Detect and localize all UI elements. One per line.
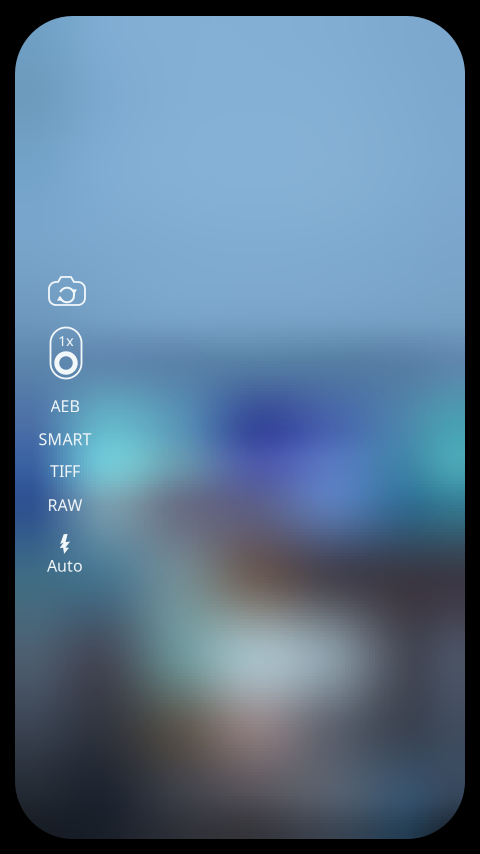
button[interactable]: Zoom, 1x (44, 321, 87, 384)
button[interactable]: TIFF (40, 452, 90, 490)
staticText: Auto (47, 555, 83, 576)
staticText: AEB (50, 395, 79, 417)
button[interactable]: Switch camera (41, 269, 93, 313)
button[interactable]: RAW (37, 486, 92, 524)
staticText: RAW (47, 494, 82, 516)
button[interactable]: SMART (28, 420, 101, 458)
staticText: 1x (58, 331, 74, 350)
staticText: SMART (38, 428, 91, 450)
staticText: TIFF (50, 460, 80, 482)
button[interactable]: Flash, Auto (37, 528, 93, 582)
button[interactable]: AEB (40, 387, 89, 425)
